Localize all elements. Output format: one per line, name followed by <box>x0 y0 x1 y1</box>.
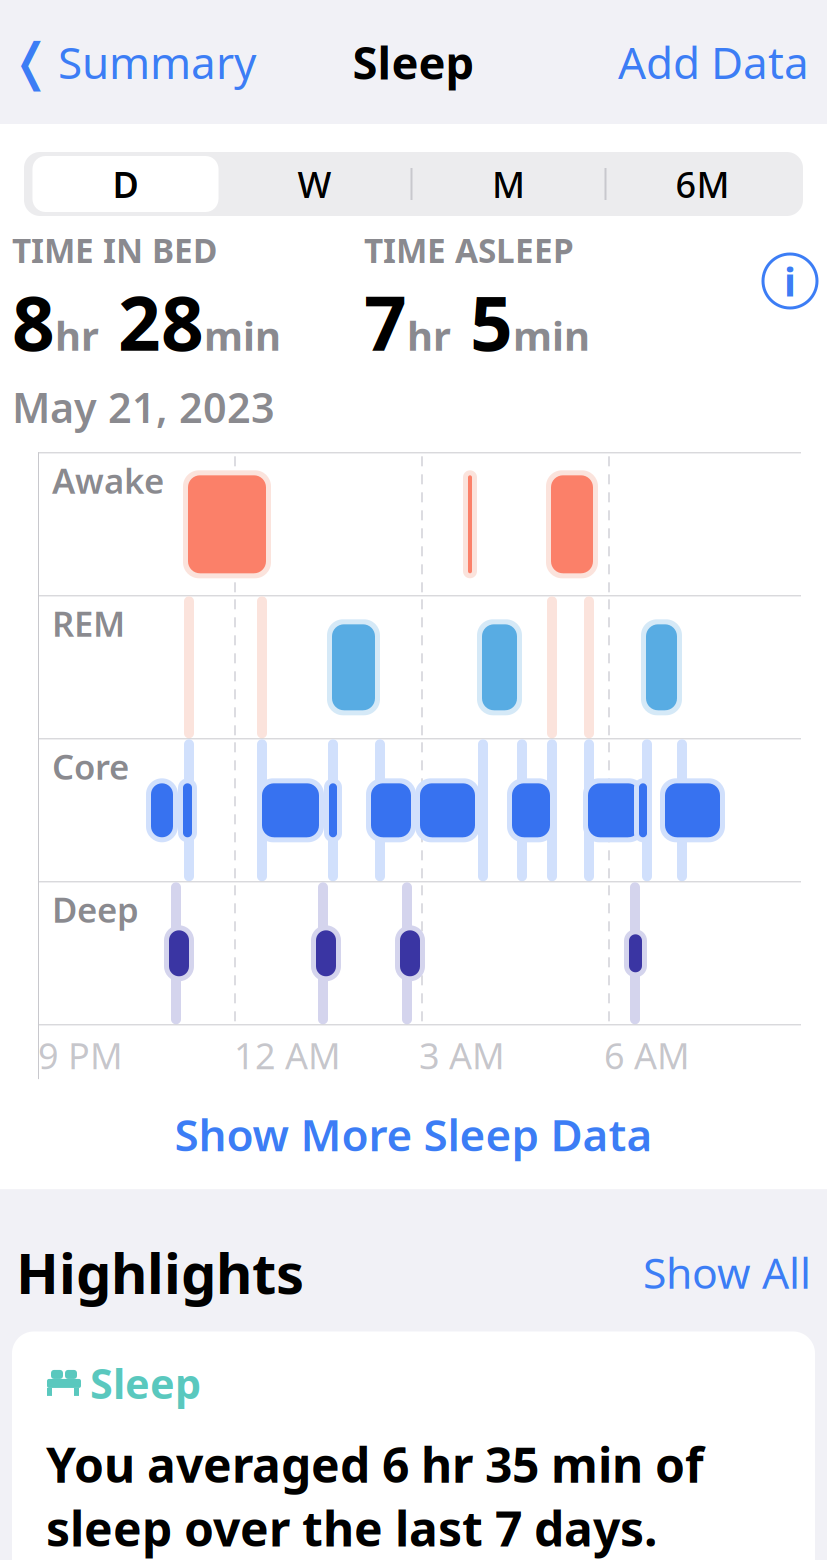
staticText: TIME ASLEEP <box>364 228 574 272</box>
staticText: 6M <box>675 160 729 208</box>
staticText: 28 <box>99 272 204 371</box>
button[interactable]: 6M <box>606 156 798 212</box>
button[interactable]: Show More Sleep Data <box>0 1079 827 1189</box>
staticText: Add Data <box>618 33 809 91</box>
staticText: Sleep <box>352 32 474 92</box>
button[interactable]: Add Data <box>618 25 827 99</box>
staticText: Core <box>52 743 129 789</box>
button[interactable]: Sleep <box>12 1331 815 1560</box>
staticText: Show All <box>643 1244 811 1301</box>
staticText: Awake <box>52 457 164 503</box>
staticText: May 21, 2023 <box>12 379 275 434</box>
button[interactable]: ❬ <box>0 25 256 99</box>
staticText: min <box>204 309 281 362</box>
staticText: 12 AM <box>234 1031 341 1079</box>
staticText: You averaged 6 hr 35 min of sleep over t… <box>46 1432 704 1560</box>
staticText: hr <box>407 309 451 362</box>
button[interactable]: About sleep stages <box>763 254 817 308</box>
button[interactable]: D <box>32 156 218 212</box>
staticText: 3 AM <box>419 1031 505 1079</box>
staticText: 6 AM <box>604 1031 690 1079</box>
button[interactable]: W <box>218 156 410 212</box>
staticText: M <box>492 160 525 208</box>
staticText: Highlights <box>16 1235 304 1309</box>
staticText: Summary <box>58 33 256 91</box>
staticText: 5 <box>451 272 513 371</box>
staticText: REM <box>52 600 125 646</box>
button[interactable]: M <box>412 156 604 212</box>
staticText: 8 <box>12 272 55 371</box>
staticText: D <box>112 160 138 208</box>
staticText: Show More Sleep Data <box>174 1105 652 1163</box>
staticText: Deep <box>52 886 139 932</box>
staticText: min <box>513 309 590 362</box>
button[interactable]: Show All <box>643 1244 811 1301</box>
staticText: 9 PM <box>38 1031 123 1079</box>
staticText: ❬ <box>10 33 52 91</box>
staticText: hr <box>55 309 99 362</box>
staticText: 7 <box>364 272 407 371</box>
staticText: TIME IN BED <box>12 228 217 272</box>
staticText: W <box>297 160 331 208</box>
staticText: Sleep <box>90 1355 201 1410</box>
staticText: i <box>784 254 796 307</box>
